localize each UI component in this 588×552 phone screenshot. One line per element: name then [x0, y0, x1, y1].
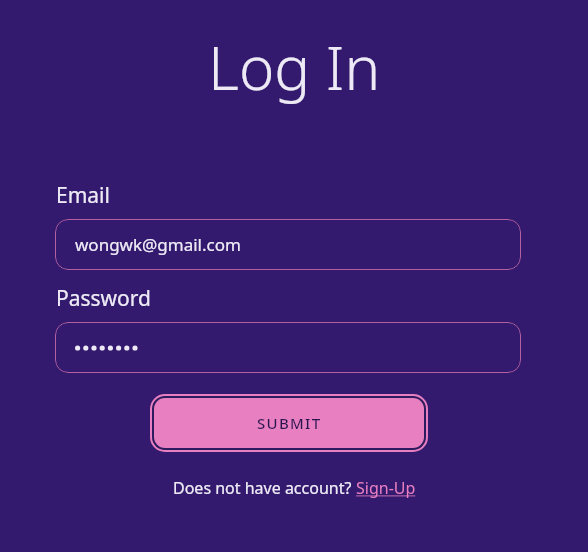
staticText: Email: [56, 181, 110, 210]
staticText: SUBMIT: [257, 413, 322, 433]
staticText: Does not have account?: [173, 477, 356, 499]
button[interactable]: [55, 322, 521, 373]
staticText: Sign-Up: [356, 477, 416, 499]
staticText: Password: [56, 284, 151, 313]
button[interactable]: wongwk@gmail.com: [55, 219, 521, 270]
staticText: wongwk@gmail.com: [75, 233, 241, 256]
button[interactable]: Sign-Up: [356, 477, 416, 499]
staticText: Log In: [208, 26, 381, 108]
button[interactable]: SUBMIT: [150, 394, 428, 452]
